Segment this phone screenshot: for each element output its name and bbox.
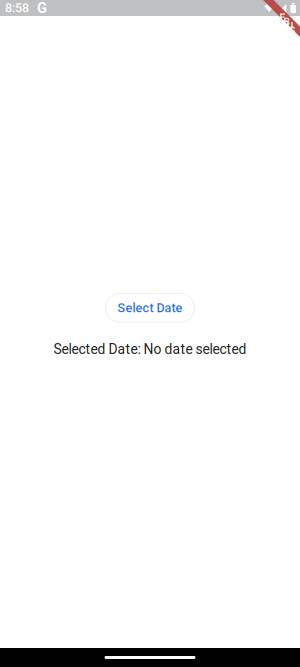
staticText: Select Date — [117, 300, 182, 315]
staticText: G — [288, 25, 295, 37]
staticText: Selected Date: No date selected — [53, 341, 246, 357]
staticText: 8:58 — [5, 1, 29, 15]
staticText: U — [286, 21, 293, 32]
staticText: E — [279, 12, 285, 24]
button[interactable]: Select Date — [105, 293, 194, 322]
staticText: B — [284, 16, 290, 28]
staticText: G — [37, 0, 47, 17]
